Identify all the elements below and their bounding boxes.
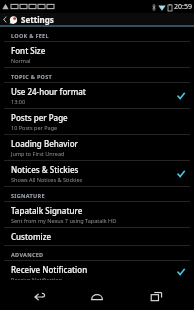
staticText: TOPIC & POST (11, 73, 53, 80)
staticText: Settings (21, 14, 54, 25)
button[interactable]: Font Size (0, 42, 194, 68)
staticText: SIGNATURE (11, 192, 45, 199)
staticText: Notices & Stickies (11, 164, 79, 175)
staticText: Use 24-hour format (11, 86, 86, 97)
staticText: 20:59 (174, 2, 192, 12)
staticText: Posts per Page (11, 112, 68, 123)
staticText: Loading Behavior (11, 138, 78, 149)
staticText: Normal (11, 57, 31, 64)
staticText: ADVANCED (11, 251, 44, 258)
staticText: Jump to First Unread (11, 150, 65, 157)
button[interactable]: Back (19, 283, 59, 310)
button[interactable]: Notices & Stickies (0, 161, 194, 187)
staticText: Sent from my Nexus 7 using Tapatalk HD (11, 217, 117, 224)
staticText: Customize (11, 231, 52, 242)
button[interactable]: Tapatalk Signature (0, 202, 194, 228)
button[interactable]: Use 24-hour format (0, 83, 194, 109)
staticText: 13:00 (11, 98, 26, 105)
button[interactable]: Home (77, 283, 117, 310)
staticText: Receive Notification (11, 276, 63, 280)
staticText: Tapatalk Signature (11, 205, 83, 216)
button[interactable]: Navigate up – Settings (0, 13, 194, 25)
staticText: 10 Posts per Page (11, 124, 58, 131)
staticText: Shows All Notices & Stickies (11, 176, 83, 183)
staticText: Receive Notification (11, 264, 88, 275)
button[interactable]: Recent apps (136, 283, 176, 310)
button[interactable]: Customize (0, 228, 194, 246)
button[interactable]: Posts per Page (0, 109, 194, 135)
staticText: Font Size (11, 45, 46, 56)
button[interactable]: Loading Behavior (0, 135, 194, 161)
button[interactable]: Receive Notification (0, 261, 194, 283)
staticText: LOOK & FEEL (11, 32, 49, 39)
